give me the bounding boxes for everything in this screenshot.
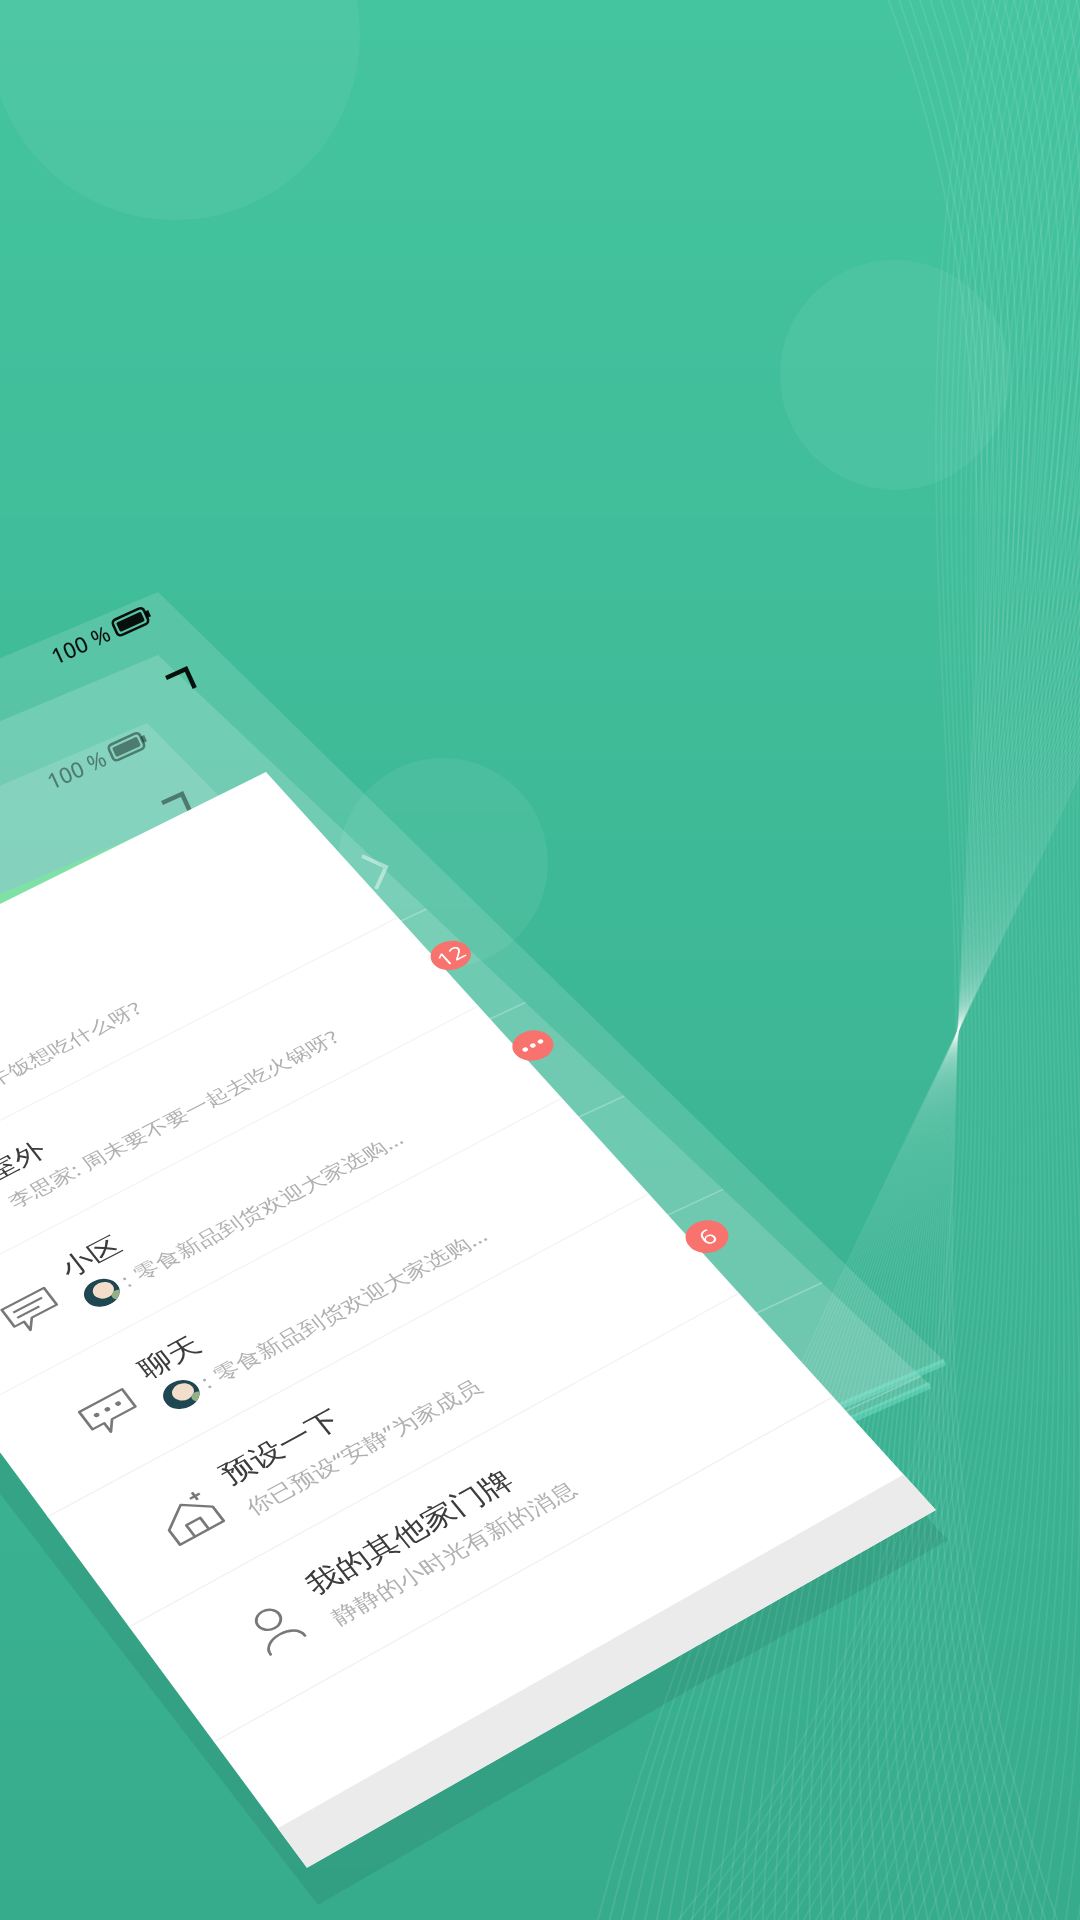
staticText: 零食新品到货欢迎大家选购… [207,1222,493,1387]
staticText: 12 [430,940,471,971]
staticText: 聊天 [131,1329,208,1385]
staticText: 妈妈: 午饭想吃什么呀? [0,996,147,1118]
staticText: 你已预设“安静”为家成员 [239,1373,488,1520]
staticText: 室外 [0,1135,53,1187]
staticText: 我的其他家门牌 [298,1464,521,1602]
button[interactable]: 我的其他家门牌 [129,1294,833,1742]
button[interactable]: 预设一下 [48,1194,739,1627]
button[interactable]: 室外 [0,918,479,1310]
staticText: 李思家: 周未要不要一起去吃火锅呀? [2,1025,345,1213]
staticText: 100 % [46,617,116,671]
staticText: : [194,1369,217,1394]
button[interactable]: 家人 [0,832,398,1212]
button[interactable]: 聊天 [0,1098,649,1517]
staticText: 零食新品到货欢迎大家选购… [127,1126,409,1285]
staticText: 小区 [53,1230,128,1284]
button[interactable]: 12 unread messages [423,935,478,976]
button[interactable]: 6 unread messages [677,1214,737,1259]
button[interactable]: 小区 [0,1006,562,1411]
staticText: 6 [691,1222,723,1251]
staticText: 预设一下 [213,1403,348,1491]
staticText: : [115,1268,137,1292]
staticText: 100 % [42,742,112,796]
staticText: 静静的小时光有新的消息 [325,1476,583,1630]
button[interactable]: More options [504,1024,561,1067]
